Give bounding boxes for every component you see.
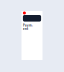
staticText: Payment xyxy=(23,24,33,31)
